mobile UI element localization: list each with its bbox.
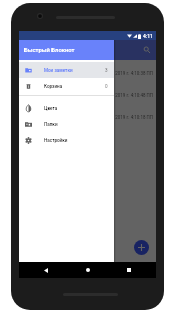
staticText: 24 апр. 2019 г. 4:10:38 ПП [24,71,153,76]
button[interactable]: Back [39,263,53,277]
staticText: 0 [105,84,108,89]
staticText: Цвета [44,106,58,111]
button[interactable]: Папки [19,116,114,132]
staticText: 24 апр. 2019 г. 4:10:48 ПП [24,93,153,98]
button[interactable]: Заметка [19,60,156,82]
button[interactable]: Search [138,40,156,60]
staticText: Мои заметки [44,68,73,73]
button[interactable]: Корзина [19,78,114,94]
staticText: Настройки [44,138,68,143]
staticText: Быстрый Блокнот [24,47,75,54]
staticText: Быстрый Блокнот [24,47,75,54]
button[interactable]: Add note [134,240,149,255]
button[interactable]: Заметка [19,104,156,126]
button[interactable]: Home [81,263,95,277]
staticText: Заметка [24,86,45,92]
staticText: Папки [44,122,58,127]
button[interactable]: Мои заметки [19,62,114,78]
staticText: 24 апр. 2019 г. 4:10:18 ПП [24,115,153,120]
staticText: Заметка [24,64,45,70]
staticText: Корзина [44,84,63,89]
staticText: 4:11 [143,33,153,39]
staticText: Заметка [24,108,45,114]
button[interactable]: Recent apps [122,263,136,277]
button[interactable]: Заметка [19,82,156,104]
button[interactable]: Цвета [19,100,114,116]
staticText: 3 [105,68,108,73]
button[interactable]: Настройки [19,132,114,148]
